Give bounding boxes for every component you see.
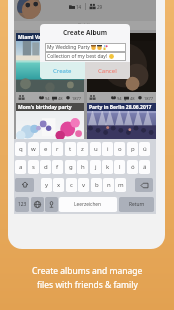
button[interactable]: f bbox=[52, 160, 63, 174]
button[interactable]: Leerzeichen bbox=[59, 197, 117, 212]
staticText: p bbox=[131, 145, 135, 153]
button[interactable]: w bbox=[28, 142, 39, 156]
button[interactable]: q bbox=[15, 142, 26, 156]
staticText: My Wedding Party bbox=[47, 44, 90, 51]
button[interactable]: My Wedding Party bbox=[45, 43, 126, 52]
staticText: Create bbox=[53, 67, 72, 75]
button[interactable]: k bbox=[102, 160, 113, 174]
button[interactable]: ä bbox=[139, 160, 150, 174]
staticText: Rock Concert bbox=[89, 34, 122, 41]
button[interactable]: c bbox=[66, 178, 77, 192]
staticText: 94 bbox=[45, 96, 50, 101]
staticText: j bbox=[95, 163, 97, 171]
button[interactable]: o bbox=[114, 142, 125, 156]
staticText: Return bbox=[129, 201, 145, 208]
staticText: t bbox=[69, 145, 72, 153]
staticText: Party in Berlin 28.06.2017 bbox=[89, 104, 152, 111]
button[interactable]: Cancel bbox=[85, 62, 130, 79]
staticText: g bbox=[69, 163, 73, 171]
button[interactable]: b bbox=[91, 178, 102, 192]
button[interactable]: Change language bbox=[31, 197, 44, 212]
button[interactable]: p bbox=[127, 142, 138, 156]
staticText: Miami Vacati bbox=[18, 34, 51, 41]
staticText: x bbox=[57, 181, 61, 189]
staticText: ä bbox=[143, 163, 147, 171]
staticText: Cancel bbox=[98, 67, 117, 75]
staticText: r bbox=[56, 145, 59, 153]
button[interactable]: v bbox=[78, 178, 89, 192]
button[interactable]: m bbox=[115, 178, 126, 192]
staticText: w bbox=[31, 145, 36, 153]
button[interactable]: Rock Concert bbox=[87, 33, 156, 103]
other: Voice input bbox=[48, 201, 55, 208]
button[interactable]: ü bbox=[139, 142, 150, 156]
button[interactable]: d bbox=[40, 160, 51, 174]
staticText: z bbox=[81, 145, 84, 153]
button[interactable]: j bbox=[90, 160, 101, 174]
button[interactable]: a bbox=[15, 160, 26, 174]
other: Shift bbox=[22, 182, 28, 188]
button[interactable]: 123 bbox=[15, 197, 29, 212]
staticText: f bbox=[56, 163, 59, 171]
button[interactable]: Create bbox=[40, 62, 85, 79]
staticText: b bbox=[95, 181, 99, 189]
staticText: u bbox=[94, 145, 98, 153]
staticText: Create Album bbox=[40, 28, 130, 37]
staticText: y bbox=[45, 181, 49, 189]
staticText: 29 bbox=[97, 4, 103, 10]
staticText: Leerzeichen bbox=[74, 201, 102, 208]
staticText: files with friends & family bbox=[37, 279, 138, 291]
button[interactable]: Public bbox=[14, 21, 156, 30]
staticText: c bbox=[70, 181, 73, 189]
staticText: s bbox=[32, 163, 35, 171]
button[interactable]: Collection of my best day! bbox=[45, 52, 126, 61]
button[interactable]: x bbox=[53, 178, 64, 192]
button[interactable]: Mom's birthday party bbox=[16, 103, 84, 139]
button[interactable]: h bbox=[77, 160, 88, 174]
button[interactable]: Miami Vacati bbox=[16, 33, 84, 103]
other: Backspace bbox=[141, 182, 148, 189]
staticText: 1877 bbox=[72, 96, 82, 101]
staticText: 48 bbox=[130, 96, 135, 101]
button[interactable]: Shift bbox=[15, 178, 34, 192]
staticText: i bbox=[107, 145, 109, 153]
button[interactable]: n bbox=[103, 178, 114, 192]
staticText: o bbox=[118, 145, 122, 153]
button[interactable]: r bbox=[52, 142, 63, 156]
staticText: d bbox=[44, 163, 48, 171]
other: Change language bbox=[34, 201, 41, 208]
button[interactable]: t bbox=[65, 142, 76, 156]
button[interactable]: ö bbox=[127, 160, 138, 174]
staticText: Collection of my best day! bbox=[47, 53, 108, 60]
button[interactable]: Party in Berlin 28.06.2017 bbox=[87, 103, 156, 139]
button[interactable]: e bbox=[40, 142, 51, 156]
staticText: l bbox=[119, 163, 121, 171]
button[interactable]: Voice input bbox=[45, 197, 58, 212]
button[interactable]: y bbox=[41, 178, 52, 192]
button[interactable]: g bbox=[65, 160, 76, 174]
staticText: a bbox=[19, 163, 23, 171]
button[interactable]: l bbox=[114, 160, 125, 174]
staticText: n bbox=[107, 181, 111, 189]
button[interactable]: i bbox=[102, 142, 113, 156]
staticText: m bbox=[118, 181, 124, 189]
staticText: ü bbox=[143, 145, 147, 153]
staticText: 1877 bbox=[144, 96, 154, 101]
staticText: Mom's birthday party bbox=[18, 104, 72, 111]
button[interactable]: s bbox=[28, 160, 39, 174]
button[interactable]: Return bbox=[119, 197, 154, 212]
staticText: k bbox=[106, 163, 110, 171]
staticText: q bbox=[19, 145, 23, 153]
button[interactable]: Backspace bbox=[135, 178, 153, 192]
staticText: Create albums and manage bbox=[32, 265, 143, 277]
staticText: 14 bbox=[76, 4, 82, 10]
staticText: 94 bbox=[117, 96, 122, 101]
staticText: h bbox=[81, 163, 85, 171]
staticText: v bbox=[82, 181, 86, 189]
staticText: Public bbox=[78, 22, 93, 29]
staticText: 123 bbox=[18, 201, 27, 208]
staticText: ö bbox=[131, 163, 135, 171]
staticText: e bbox=[44, 145, 48, 153]
button[interactable]: z bbox=[77, 142, 88, 156]
button[interactable]: u bbox=[90, 142, 101, 156]
